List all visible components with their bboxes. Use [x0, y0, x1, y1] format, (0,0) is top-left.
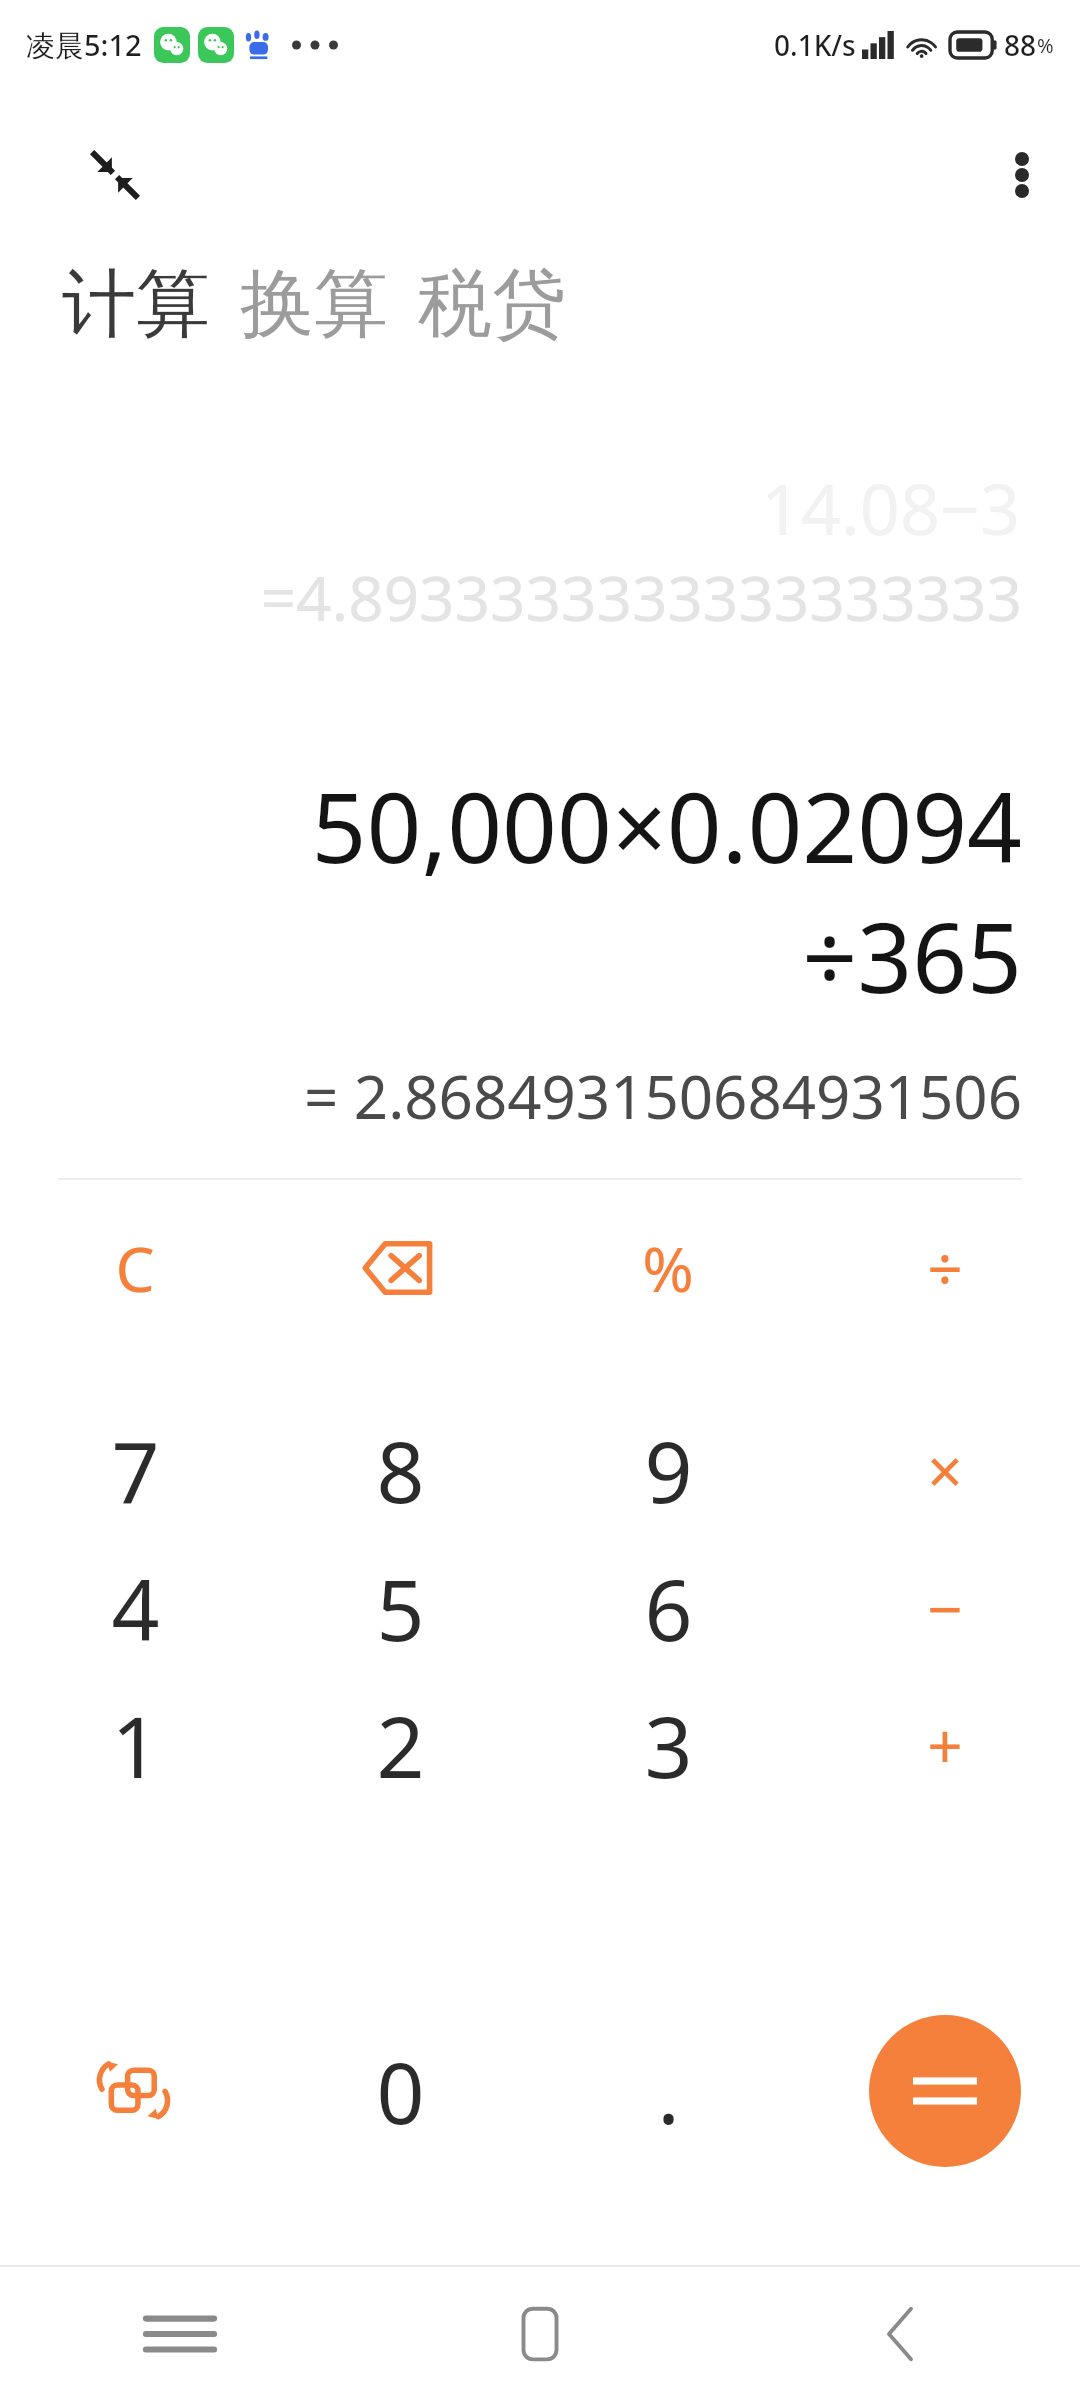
button[interactable]: 7: [17, 1352, 253, 1588]
staticText: 换算: [240, 258, 388, 351]
button[interactable]: ×: [827, 1352, 1063, 1588]
staticText: 计算: [62, 258, 210, 351]
button[interactable]: 计算: [62, 258, 210, 351]
button[interactable]: Collapse: [75, 135, 155, 215]
button[interactable]: 2: [282, 1627, 518, 1863]
staticText: −: [927, 1566, 963, 1650]
staticText: =4.8933333333333333333: [0, 555, 1022, 639]
staticText: %: [1037, 32, 1054, 59]
staticText: 税贷: [418, 258, 566, 351]
button[interactable]: 1: [17, 1627, 253, 1863]
staticText: 5: [376, 1551, 425, 1665]
staticText: C: [115, 1226, 155, 1310]
button[interactable]: %: [550, 1150, 786, 1386]
button[interactable]: 4: [17, 1490, 253, 1726]
staticText: ×: [927, 1428, 963, 1512]
staticText: 7: [111, 1413, 160, 1527]
button[interactable]: 6: [550, 1490, 786, 1726]
staticText: 50,000×0.02094: [0, 760, 1022, 891]
staticText: 8: [376, 1413, 425, 1527]
button[interactable]: 8: [282, 1352, 518, 1588]
button[interactable]: .: [550, 1973, 786, 2209]
button[interactable]: Home: [360, 2267, 720, 2400]
staticText: = 2.868493150684931506: [0, 1055, 1022, 1137]
staticText: +: [927, 1703, 963, 1787]
staticText: 1: [111, 1688, 160, 1802]
staticText: 9: [644, 1413, 693, 1527]
button[interactable]: C: [17, 1150, 253, 1386]
staticText: 88: [1004, 26, 1037, 64]
button[interactable]: Convert units: [17, 1973, 253, 2209]
button[interactable]: +: [827, 1627, 1063, 1863]
button[interactable]: −: [827, 1490, 1063, 1726]
staticText: .: [657, 2034, 680, 2148]
button[interactable]: Back: [720, 2267, 1080, 2400]
button[interactable]: 换算: [240, 258, 388, 351]
staticText: 4: [111, 1551, 160, 1665]
staticText: ÷: [927, 1226, 963, 1310]
staticText: 凌晨5:12: [26, 25, 142, 65]
staticText: 0.1K/s: [774, 26, 856, 64]
button[interactable]: Backspace: [282, 1150, 518, 1386]
staticText: %: [642, 1226, 694, 1310]
button[interactable]: 5: [282, 1490, 518, 1726]
staticText: 3: [644, 1688, 693, 1802]
button[interactable]: Recent apps: [0, 2267, 360, 2400]
button[interactable]: 9: [550, 1352, 786, 1588]
button[interactable]: 税贷: [418, 258, 566, 351]
button[interactable]: 3: [550, 1627, 786, 1863]
button[interactable]: More options: [982, 135, 1062, 215]
button[interactable]: ÷: [827, 1150, 1063, 1386]
staticText: 2: [376, 1688, 425, 1802]
staticText: 6: [644, 1551, 693, 1665]
button[interactable]: 0: [282, 1973, 518, 2209]
staticText: 0: [376, 2034, 425, 2148]
button[interactable]: Equals: [869, 2015, 1021, 2167]
staticText: ÷365: [0, 890, 1022, 1021]
